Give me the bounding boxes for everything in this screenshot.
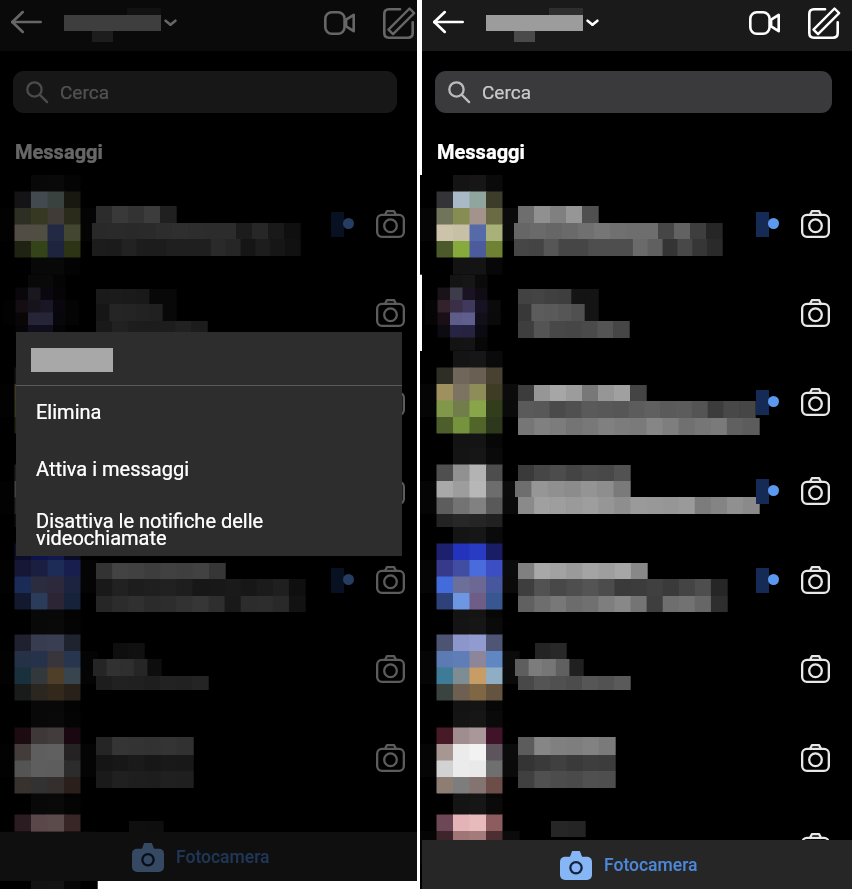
button[interactable]: Camera	[801, 744, 830, 772]
staticText: Elimina	[36, 400, 102, 423]
button[interactable]: Camera	[801, 299, 830, 327]
button[interactable]: Camera	[801, 388, 830, 416]
button[interactable]: Camera	[0, 357, 417, 446]
button[interactable]: Camera	[801, 477, 830, 505]
button[interactable]: Open chat list	[582, 12, 602, 32]
button[interactable]: Cerca	[13, 71, 397, 113]
button[interactable]: Open chat list	[160, 12, 180, 32]
button[interactable]: Camera	[376, 477, 405, 505]
staticText: Fotocamera	[176, 847, 270, 868]
staticText: Attiva i messaggi	[36, 457, 190, 480]
button[interactable]: Camera	[376, 744, 405, 772]
button[interactable]: Camera	[376, 388, 405, 416]
staticText: Cerca	[482, 81, 531, 103]
button[interactable]: Camera	[0, 802, 417, 889]
staticText: Fotocamera	[604, 855, 698, 876]
button[interactable]: Back	[433, 11, 464, 33]
staticText: Disattiva le notifiche delle	[36, 509, 264, 532]
button[interactable]: Camera	[0, 624, 417, 713]
button[interactable]: Back	[11, 11, 42, 33]
button[interactable]: Camera	[376, 210, 405, 238]
button[interactable]: Camera	[422, 446, 852, 535]
button[interactable]: Video call	[749, 11, 780, 35]
button[interactable]: New message	[808, 8, 839, 39]
button[interactable]: Camera	[0, 179, 417, 268]
button[interactable]: Camera	[801, 210, 830, 238]
button[interactable]: Camera	[422, 624, 852, 713]
button[interactable]: Camera	[422, 179, 852, 268]
button[interactable]: Camera	[801, 566, 830, 594]
button[interactable]: Camera	[801, 833, 830, 861]
button[interactable]: Attiva i messaggi	[16, 443, 402, 500]
button[interactable]: Camera	[422, 268, 852, 357]
button[interactable]: Camera	[422, 802, 852, 889]
button[interactable]: Fotocamera	[422, 840, 852, 889]
button[interactable]: Fotocamera	[0, 832, 417, 881]
button[interactable]: Camera	[376, 655, 405, 683]
button[interactable]: Video call	[324, 11, 355, 35]
button[interactable]: Disattiva le notifiche delle	[16, 500, 402, 556]
button[interactable]: Elimina	[16, 386, 402, 443]
staticText: Cerca	[60, 81, 109, 103]
staticText: Messaggi	[437, 140, 525, 163]
button[interactable]: New message	[383, 8, 414, 39]
staticText: Messaggi	[15, 140, 103, 163]
button[interactable]: Camera	[0, 535, 417, 624]
button[interactable]: Cerca	[435, 71, 832, 113]
button[interactable]: Camera	[376, 299, 405, 327]
button[interactable]: Camera	[801, 655, 830, 683]
button[interactable]: Camera	[422, 535, 852, 624]
staticText: videochiamate	[36, 526, 167, 549]
button[interactable]: Camera	[422, 357, 852, 446]
button[interactable]: Camera	[422, 713, 852, 802]
button[interactable]: Camera	[0, 713, 417, 802]
button[interactable]: Camera	[376, 566, 405, 594]
button[interactable]: Camera	[0, 446, 417, 535]
button[interactable]: Camera	[0, 268, 417, 357]
